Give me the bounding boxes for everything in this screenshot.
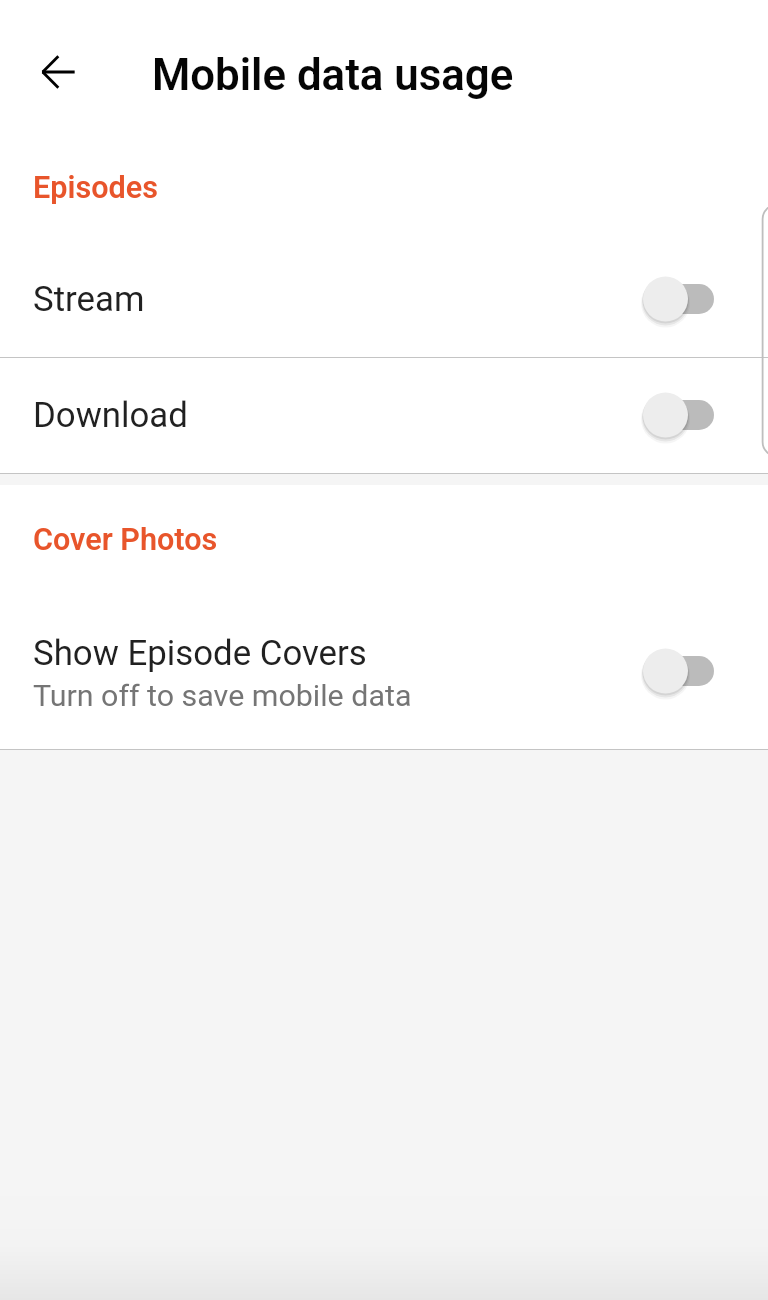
button[interactable]: Show Episode Covers <box>0 597 768 749</box>
button[interactable]: Download <box>0 358 768 473</box>
staticText: Cover Photos <box>33 522 218 558</box>
staticText: Download <box>33 395 188 436</box>
button[interactable]: Toggle <box>642 389 714 441</box>
button[interactable]: Stream <box>0 241 768 357</box>
staticText: Show Episode Covers <box>33 633 367 674</box>
staticText: Stream <box>33 279 145 320</box>
button[interactable]: Back <box>10 24 106 120</box>
button[interactable]: Toggle <box>642 273 714 325</box>
staticText: Mobile data usage <box>152 49 514 100</box>
staticText: Episodes <box>33 170 158 206</box>
button[interactable]: Toggle <box>642 645 714 697</box>
staticText: Turn off to save mobile data <box>33 678 412 714</box>
